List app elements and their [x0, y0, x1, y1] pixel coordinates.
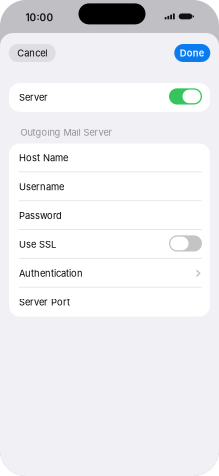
staticText: Outgoing Mail Server [20, 127, 111, 138]
staticText: Server [19, 92, 48, 103]
button[interactable]: Username [9, 172, 210, 201]
staticText: 10:00 [26, 12, 54, 24]
button[interactable]: Host Name [9, 143, 210, 172]
staticText: Cancel [17, 47, 47, 59]
button[interactable]: Authentication [9, 259, 210, 288]
button[interactable]: Password [9, 201, 210, 230]
button[interactable]: Server Port [9, 288, 210, 317]
staticText: Password [19, 210, 62, 221]
button[interactable]: Cancel [9, 44, 56, 62]
staticText: Username [19, 181, 64, 192]
staticText: Server Port [19, 296, 70, 308]
button[interactable]: Done [174, 44, 210, 62]
staticText: Use SSL [19, 239, 56, 250]
staticText: Done [180, 47, 205, 59]
staticText: Authentication [19, 268, 83, 279]
staticText: Host Name [19, 152, 68, 164]
button[interactable]: Server [9, 83, 210, 112]
button[interactable]: Use SSL [9, 230, 210, 259]
